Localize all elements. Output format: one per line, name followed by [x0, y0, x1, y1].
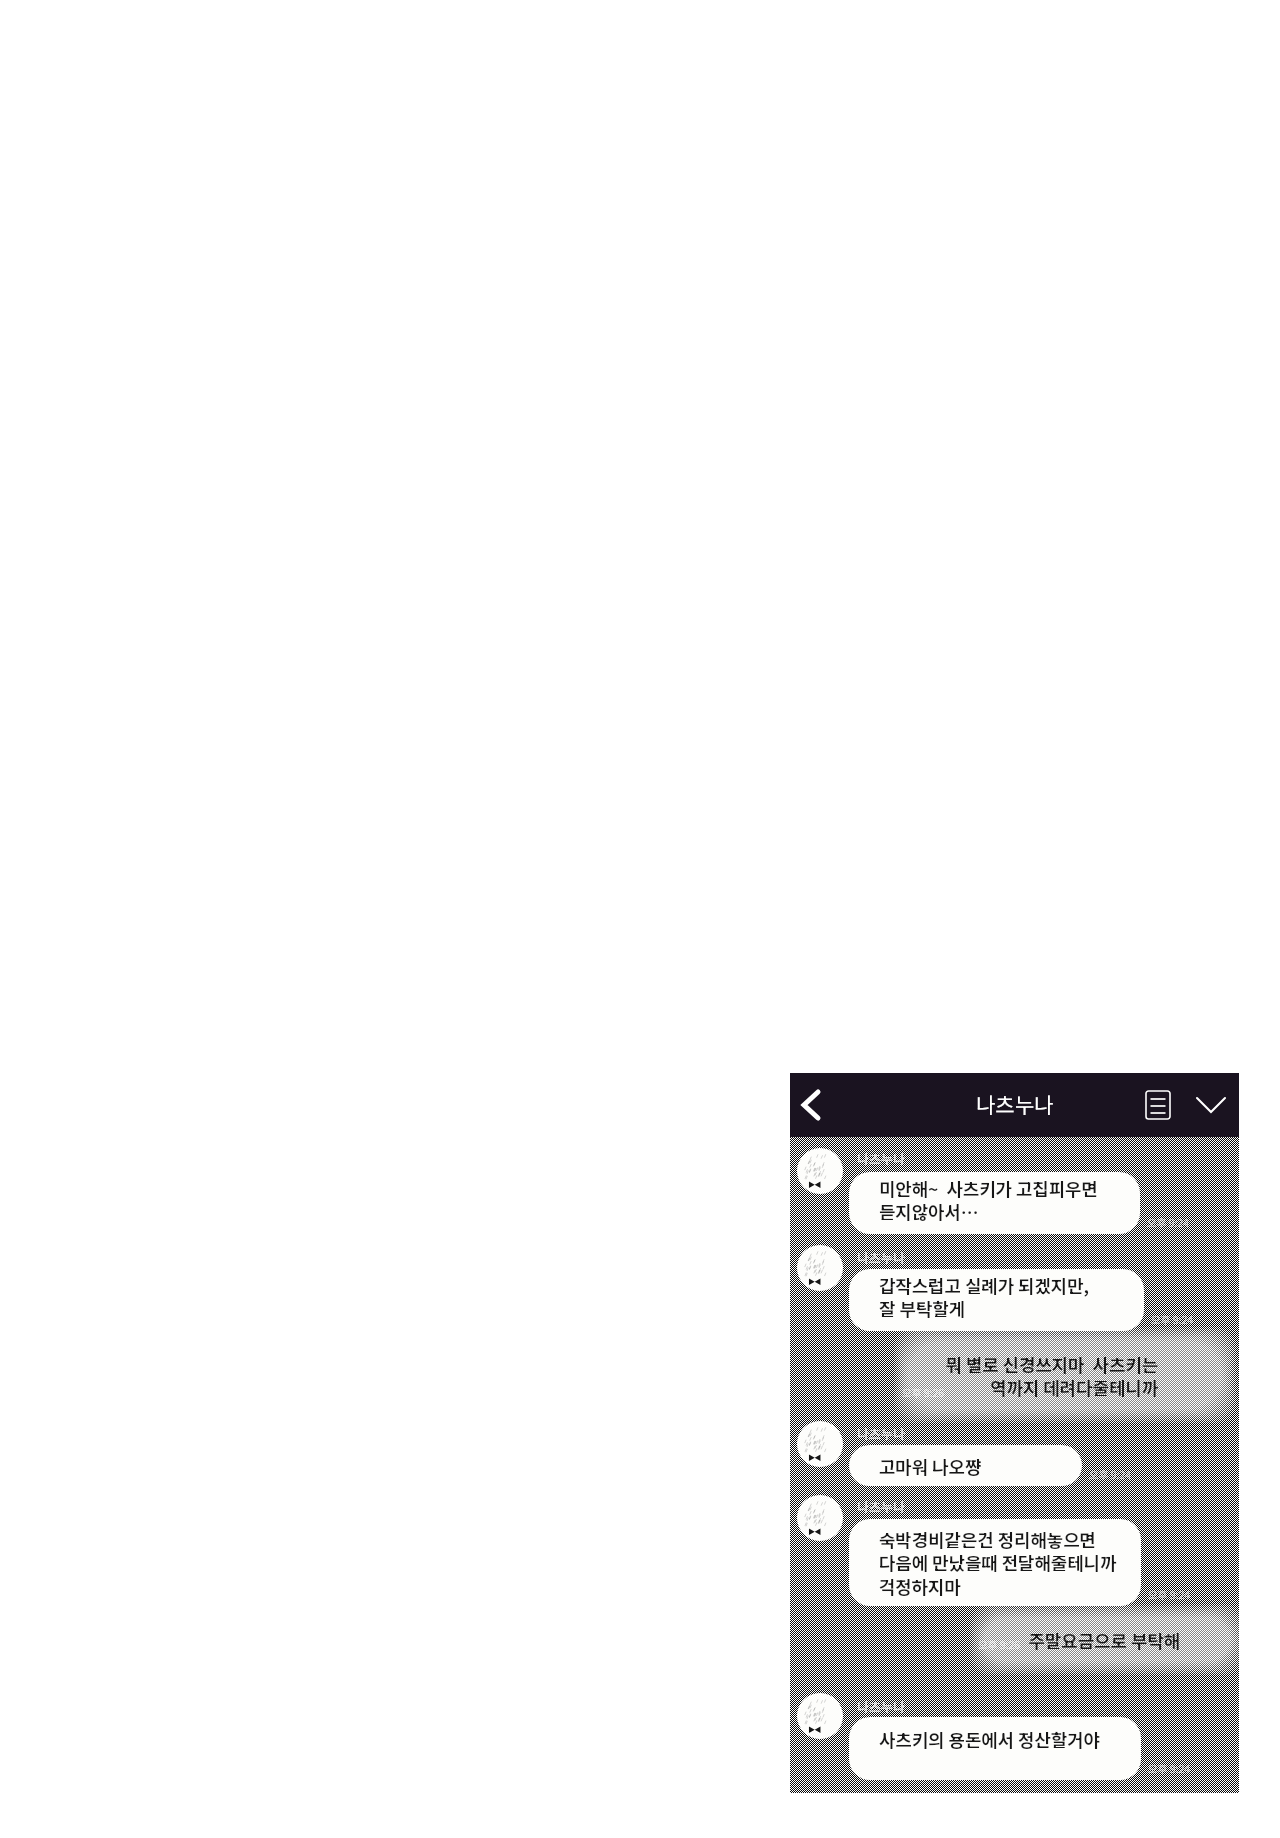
button[interactable]: Expand	[1187, 1081, 1235, 1129]
button[interactable]: 갑작스럽고 실례가 되겠지만, 잘 부탁할게	[849, 1269, 1144, 1331]
staticText: 오후 9:24	[1151, 1312, 1194, 1327]
staticText: 나츠누나	[976, 1089, 1054, 1119]
staticText: 나츠누나	[857, 1149, 905, 1168]
staticText: 나츠누나	[857, 1424, 905, 1443]
staticText: 고마워 나오쨩	[879, 1453, 982, 1479]
button[interactable]: 뭐 별로 신경쓰지마 사츠키는 역까지 데려다줄테니까	[908, 1341, 1222, 1409]
staticText: 갑작스럽고 실례가 되겠지만, 잘 부탁할게	[879, 1272, 1090, 1321]
staticText: 사츠키의 용돈에서 정산할거야	[879, 1726, 1100, 1752]
button[interactable]: Back	[787, 1081, 835, 1129]
button[interactable]: 미안해~ 사츠키가 고집피우면 듣지않아서…	[849, 1172, 1140, 1234]
staticText: 미안해~ 사츠키가 고집피우면 듣지않아서…	[879, 1175, 1098, 1224]
staticText: 나츠누나	[857, 1248, 905, 1267]
staticText: 나츠누나	[857, 1697, 905, 1716]
staticText: 나츠누나	[857, 1497, 905, 1516]
staticText: 오후 9:24	[1148, 1761, 1191, 1776]
staticText: 오후 9:26	[978, 1637, 1021, 1652]
staticText: 오후 9:24	[1148, 1587, 1191, 1602]
staticText: 뭐 별로 신경쓰지마 사츠키는 역까지 데려다줄테니까	[945, 1351, 1158, 1400]
button[interactable]: 사츠키의 용돈에서 정산할거야	[849, 1717, 1141, 1780]
staticText: 숙박경비같은건 정리해놓으면 다음에 만났을때 전달해줄테니까 걱정하지마	[879, 1526, 1117, 1599]
button[interactable]: 고마워 나오쨩	[849, 1445, 1082, 1486]
button[interactable]: 숙박경비같은건 정리해놓으면 다음에 만났을때 전달해줄테니까 걱정하지마	[849, 1519, 1141, 1606]
button[interactable]: 주말요금으로 부탁해	[984, 1618, 1230, 1661]
staticText: 주말요금으로 부탁해	[1028, 1627, 1180, 1653]
staticText: 오후 9:26	[902, 1385, 945, 1400]
button[interactable]: Notes	[1135, 1082, 1181, 1128]
staticText: 오후 9:24	[1147, 1215, 1190, 1230]
staticText: 오후 9:24	[1089, 1467, 1132, 1482]
